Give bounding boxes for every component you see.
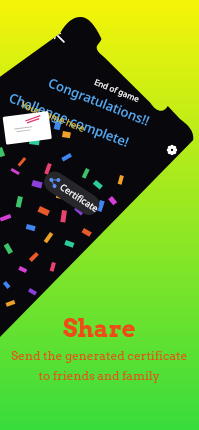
button[interactable]: Share certificate — [0, 0, 199, 430]
